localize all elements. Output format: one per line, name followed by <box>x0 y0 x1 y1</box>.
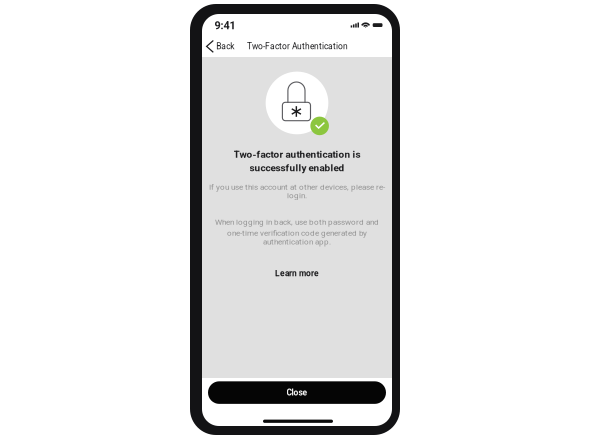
staticText: If you use this account at other devices… <box>209 182 385 192</box>
button[interactable]: Back <box>202 36 238 56</box>
staticText: Two-Factor Authentication <box>247 41 348 51</box>
staticText: Two-factor authentication is <box>233 149 360 160</box>
staticText: 9:41 <box>215 19 236 32</box>
staticText: successfully enabled <box>249 162 344 174</box>
staticText: Learn more <box>275 268 319 278</box>
staticText: authentication app. <box>263 237 331 247</box>
staticText: one-time verification code generated by <box>227 228 367 238</box>
staticText: Back <box>216 41 234 51</box>
staticText: login. <box>287 191 307 200</box>
staticText: Close <box>286 388 307 397</box>
button[interactable]: Close <box>208 381 386 404</box>
staticText: When logging in back, use both password … <box>215 217 379 227</box>
button[interactable]: Learn more <box>267 264 327 282</box>
